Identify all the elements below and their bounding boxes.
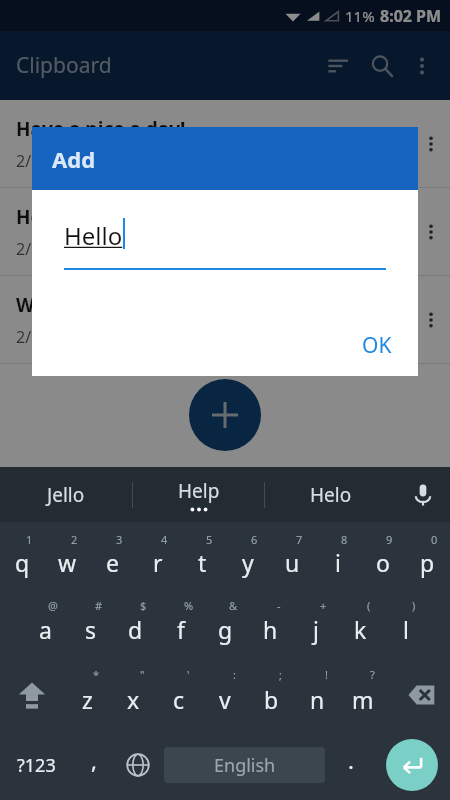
staticText: ?123 [17,753,56,778]
button[interactable]: ; [248,660,294,730]
staticText: Hello [64,219,123,252]
staticText: n [310,684,325,715]
staticText: c [173,684,185,715]
button[interactable]: Have a nice a day! [0,100,450,187]
button[interactable]: Shift [0,660,64,730]
staticText: 0 [431,532,438,547]
button[interactable]: 2 [45,522,90,591]
staticText: x [127,684,140,715]
button[interactable]: " [110,660,156,730]
button[interactable]: Enter [373,730,450,800]
button[interactable]: , [72,730,116,800]
staticText: # [95,598,103,613]
button[interactable]: OK [354,327,400,364]
staticText: ' [187,667,190,682]
button[interactable]: Jello [0,467,132,522]
button[interactable]: 9 [360,522,405,591]
button[interactable]: 7 [270,522,315,591]
staticText: Welcome back [16,292,153,318]
button[interactable]: 6 [225,522,270,591]
staticText: r [153,547,163,578]
staticText: @ [48,598,58,613]
staticText: u [285,547,300,578]
staticText: 2/14/2018 3:20 PM [16,326,157,348]
staticText: b [264,684,279,715]
staticText: l [403,614,409,645]
button[interactable]: + [293,591,338,660]
staticText: * [93,667,100,682]
staticText: , [91,745,97,775]
staticText: 8 [341,532,348,547]
button[interactable]: % [158,591,203,660]
button[interactable]: # [68,591,113,660]
staticText: Jello [47,482,85,508]
button[interactable]: $ [113,591,158,660]
staticText: w [58,547,77,578]
button[interactable]: More options [404,48,440,84]
button[interactable]: 8 [315,522,360,591]
button[interactable]: Delete [386,660,450,730]
staticText: & [229,598,238,613]
button[interactable]: : [202,660,248,730]
button[interactable]: ?123 [0,730,72,800]
button[interactable]: * [64,660,110,730]
staticText: 5 [206,532,213,547]
button[interactable]: . [329,730,373,800]
staticText: ; [279,667,282,682]
staticText: d [128,614,143,645]
staticText: o [376,547,390,578]
staticText: 12 chars [352,325,416,347]
button[interactable]: Item options [416,305,446,335]
button[interactable]: Change language [116,730,160,800]
button[interactable]: English [164,747,325,783]
button[interactable]: Voice input [396,467,450,522]
button[interactable]: ) [383,591,428,660]
staticText: % [184,598,194,613]
button[interactable]: Add [189,379,261,451]
staticText: 1 [26,532,33,547]
staticText: Have a nice a day! [16,116,186,142]
staticText: m [352,684,374,715]
button[interactable]: Search [360,44,404,88]
button[interactable]: & [203,591,248,660]
staticText: Clipboard [16,51,112,80]
staticText: f [177,614,185,645]
staticText: e [106,547,119,578]
button[interactable]: 0 [405,522,450,591]
button[interactable]: 5 [180,522,225,591]
button[interactable]: 1 [0,522,45,591]
staticText: ) [412,598,416,613]
staticText: " [140,667,145,682]
staticText: Hello World [16,204,127,230]
button[interactable]: @ [22,591,68,660]
button[interactable]: Hello World [0,188,450,275]
button[interactable]: - [248,591,293,660]
staticText: 2/14/2018 3:22 PM [16,150,157,172]
staticText: 3 [116,532,123,547]
staticText: $ [140,598,147,613]
staticText: ! [325,667,328,682]
staticText: a [39,614,52,645]
staticText: q [15,547,30,578]
button[interactable]: ( [338,591,383,660]
staticText: g [218,614,233,645]
button[interactable]: Help [133,467,264,522]
button[interactable]: 3 [90,522,135,591]
staticText: ( [367,598,371,613]
button[interactable]: Sort [316,44,360,88]
button[interactable]: ? [340,660,386,730]
staticText: j [313,614,319,645]
staticText: OK [362,331,392,360]
button[interactable]: ' [156,660,202,730]
button[interactable]: ! [294,660,340,730]
staticText: v [219,684,231,715]
button[interactable]: Helo [265,467,396,522]
button[interactable]: Welcome back [0,276,450,363]
button[interactable]: 4 [135,522,180,591]
button[interactable]: Item options [416,129,446,159]
staticText: y [242,547,254,578]
button[interactable]: Item options [416,217,446,247]
staticText: 9 [386,532,393,547]
